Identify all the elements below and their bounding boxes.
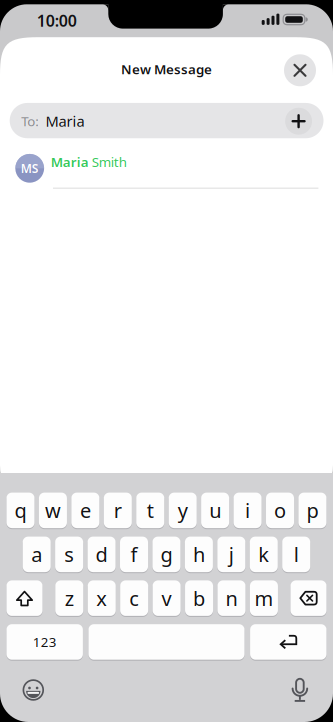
staticText: Maria [51,153,89,171]
staticText: w [45,497,61,524]
button[interactable]: z [55,579,83,617]
button[interactable]: v [153,579,181,617]
button[interactable]: m [250,579,278,617]
staticText: y [178,497,188,524]
button[interactable]: Return [250,623,326,661]
staticText: u [209,497,221,524]
button[interactable]: h [185,536,213,573]
button[interactable]: b [185,579,213,617]
staticText: b [193,585,205,611]
staticText: Smith [92,153,127,171]
button[interactable]: e [71,492,99,529]
staticText: New Message [121,60,212,78]
staticText: x [96,585,107,611]
button[interactable]: r [104,492,132,529]
staticText: MS [21,160,39,176]
button[interactable]: a [23,536,51,573]
button[interactable]: Close [284,54,316,86]
staticText: h [193,541,205,568]
button[interactable]: 123 [6,623,83,661]
staticText: p [306,497,318,524]
staticText: r [114,497,122,524]
button[interactable]: c [120,579,148,617]
staticText: To: [21,112,39,130]
staticText: f [130,541,137,568]
button[interactable]: g [152,536,180,573]
button[interactable]: Emoji [20,677,46,703]
staticText: m [254,585,273,611]
staticText: c [129,585,139,611]
staticText: 123 [33,633,57,651]
button[interactable]: j [217,536,245,573]
button[interactable]: y [169,492,197,529]
staticText: g [160,541,172,568]
staticText: z [65,585,74,611]
staticText: o [274,497,286,524]
button[interactable]: f [120,536,148,573]
staticText: i [245,497,250,524]
button[interactable]: k [250,536,278,573]
staticText: q [14,497,26,524]
button[interactable]: p [298,492,326,529]
staticText: t [147,497,154,524]
button[interactable]: Space [88,623,244,661]
button[interactable]: Add Contact [285,108,312,135]
button[interactable]: Dictate [289,675,311,705]
button[interactable]: q [6,492,34,529]
staticText: Maria [45,111,84,131]
staticText: v [162,585,172,611]
button[interactable]: Delete [290,579,326,617]
button[interactable]: l [282,536,310,573]
button[interactable]: d [88,536,116,573]
staticText: n [225,585,237,611]
button[interactable]: MS [0,145,333,188]
staticText: 10:00 [37,10,77,31]
staticText: l [294,541,299,568]
button[interactable]: Shift [6,579,42,617]
staticText: s [64,541,74,568]
staticText: k [258,541,269,568]
button[interactable]: x [88,579,116,617]
staticText: a [31,541,42,568]
staticText: e [80,497,91,524]
button[interactable]: n [217,579,245,617]
button[interactable]: t [136,492,164,529]
staticText: j [229,541,234,568]
button[interactable]: s [55,536,83,573]
button[interactable]: o [266,492,294,529]
button[interactable]: u [201,492,229,529]
staticText: d [96,541,108,568]
button[interactable]: i [234,492,262,529]
button[interactable]: w [39,492,67,529]
